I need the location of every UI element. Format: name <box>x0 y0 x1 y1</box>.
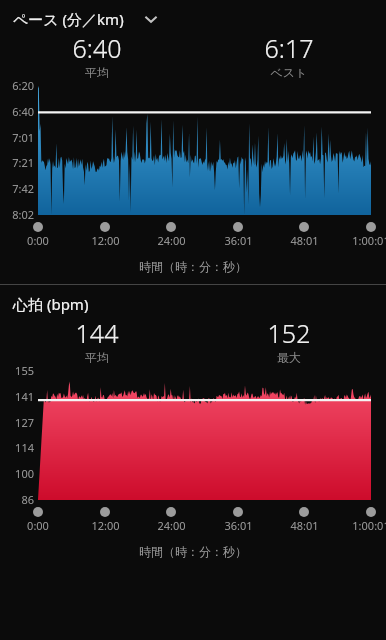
staticText: 0:00 <box>27 233 49 248</box>
button[interactable]: Change metric <box>140 8 162 30</box>
staticText: ベスト <box>234 65 344 78</box>
staticText: 時間（時：分：秒） <box>139 544 247 559</box>
staticText: 8:02 <box>12 207 34 222</box>
staticText: 時間（時：分：秒） <box>139 259 247 274</box>
staticText: 1:00:01 <box>352 518 386 533</box>
staticText: 6:17 <box>234 31 344 65</box>
staticText: 152 <box>234 316 344 350</box>
staticText: 最大 <box>234 350 344 363</box>
staticText: 141 <box>15 389 34 404</box>
staticText: 36:01 <box>224 233 253 248</box>
staticText: 7:21 <box>12 155 34 170</box>
staticText: 7:42 <box>12 181 34 196</box>
staticText: 6:40 <box>42 31 152 65</box>
staticText: 1:00:01 <box>352 233 386 248</box>
staticText: 144 <box>42 316 152 350</box>
staticText: 100 <box>15 466 34 481</box>
button[interactable]: 心拍 (bpm) <box>0 292 386 316</box>
staticText: 114 <box>15 440 34 455</box>
staticText: 86 <box>21 492 34 507</box>
staticText: 12:00 <box>91 518 120 533</box>
staticText: 心拍 (bpm) <box>13 294 89 314</box>
staticText: 24:00 <box>157 233 186 248</box>
button[interactable]: ペース (分／km) <box>0 7 386 31</box>
staticText: 12:00 <box>91 233 120 248</box>
staticText: 7:01 <box>12 130 34 145</box>
staticText: 24:00 <box>157 518 186 533</box>
staticText: 36:01 <box>224 518 253 533</box>
staticText: 48:01 <box>290 233 319 248</box>
staticText: 6:40 <box>12 104 34 119</box>
staticText: 48:01 <box>290 518 319 533</box>
staticText: 平均 <box>42 350 152 363</box>
staticText: 平均 <box>42 65 152 78</box>
staticText: 0:00 <box>27 518 49 533</box>
staticText: 6:20 <box>12 78 34 93</box>
staticText: 127 <box>15 415 34 430</box>
staticText: 155 <box>15 363 34 378</box>
staticText: ペース (分／km) <box>13 9 124 29</box>
